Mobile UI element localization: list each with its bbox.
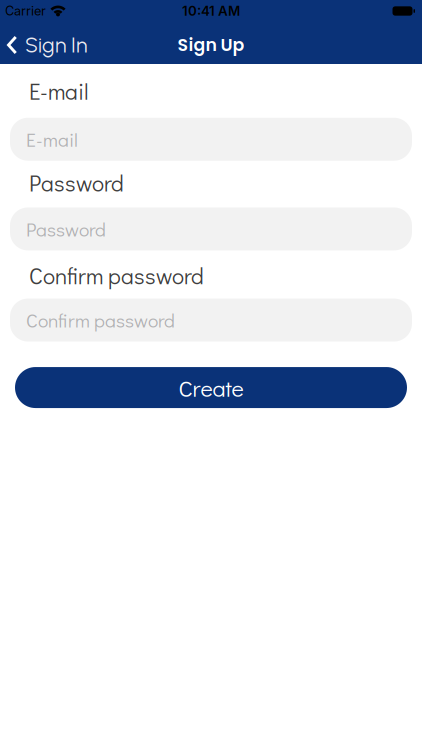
staticText: Confirm password	[26, 307, 175, 333]
staticText: 10:41 AM	[182, 3, 240, 19]
staticText: Password	[29, 168, 124, 197]
staticText: E-mail	[29, 76, 89, 106]
button[interactable]: Confirm password text field	[0, 299, 422, 342]
button[interactable]: Create	[0, 367, 422, 408]
staticText: E-mail	[26, 126, 78, 152]
staticText: Sign In	[25, 32, 87, 58]
staticText: Create	[178, 372, 243, 403]
staticText: Confirm password	[29, 260, 204, 290]
staticText: Password	[26, 216, 106, 242]
button[interactable]: E-mail text field	[0, 118, 422, 161]
button[interactable]: Password text field	[0, 207, 422, 250]
staticText: Sign Up	[177, 33, 244, 57]
button[interactable]: Back	[7, 32, 87, 58]
staticText: Carrier	[5, 3, 46, 19]
